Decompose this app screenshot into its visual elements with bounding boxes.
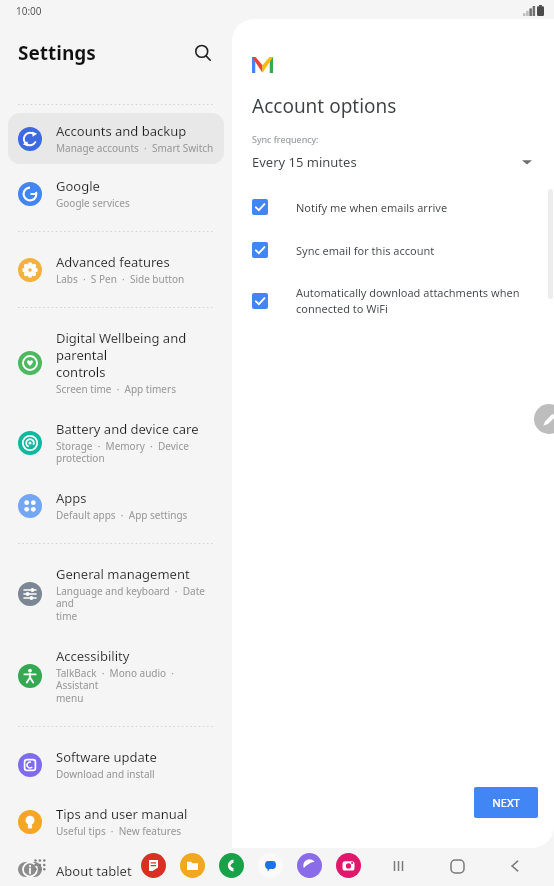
button[interactable]: Digital Wellbeing and parental controls [8, 320, 224, 405]
button[interactable]: Recents [386, 853, 412, 879]
button[interactable]: Messages [258, 853, 283, 878]
button[interactable]: Search [188, 38, 218, 68]
button[interactable]: My Files [180, 853, 205, 878]
staticText: Battery and device care [56, 420, 199, 438]
button[interactable]: Home [444, 853, 470, 879]
staticText: Accounts and backup [56, 122, 187, 140]
button[interactable]: Accounts and backup [8, 113, 224, 164]
staticText: Sync email for this account [296, 243, 534, 258]
button[interactable]: Advanced features [8, 244, 224, 295]
staticText: Automatically download attachments when … [296, 285, 534, 316]
staticText: Apps [56, 489, 87, 507]
staticText: Software update [56, 748, 157, 766]
button[interactable]: Battery and device care [8, 411, 224, 474]
staticText: Digital Wellbeing and parental controls [56, 329, 214, 381]
staticText: Tips and user manual [56, 805, 188, 823]
button[interactable]: General management [8, 556, 224, 632]
staticText: Advanced features [56, 253, 170, 271]
button[interactable]: Edit [534, 404, 554, 434]
button[interactable]: All apps [28, 853, 54, 879]
button[interactable]: Apps [8, 480, 224, 531]
staticText: Manage accounts · Smart Switch [56, 141, 214, 155]
staticText: Settings [18, 40, 96, 66]
button[interactable]: Sync email for this account [252, 236, 534, 264]
button[interactable]: Phone [219, 853, 244, 878]
button[interactable]: Every 15 minutes [252, 153, 534, 171]
button[interactable]: Samsung Notes [141, 853, 166, 878]
staticText: Default apps · App settings [56, 508, 188, 522]
staticText: Storage · Memory · Device protection [56, 439, 189, 465]
staticText: Language and keyboard · Date and time [56, 584, 214, 623]
staticText: About tablet [56, 862, 132, 877]
button[interactable]: Notify me when emails arrive [252, 193, 534, 221]
button[interactable]: Internet [297, 853, 322, 878]
staticText: Notify me when emails arrive [296, 200, 534, 215]
staticText: Every 15 minutes [252, 153, 357, 171]
button[interactable]: Tips and user manual [8, 796, 224, 847]
button[interactable]: Back [502, 853, 528, 879]
staticText: 10:00 [16, 4, 42, 18]
staticText: Accessibility [56, 647, 130, 665]
staticText: Sync frequency: [252, 133, 319, 145]
button[interactable]: Automatically download attachments when … [252, 279, 534, 322]
staticText: General management [56, 565, 190, 583]
staticText: Useful tips · New features [56, 824, 182, 838]
staticText: Labs · S Pen · Side button [56, 272, 185, 286]
staticText: Download and install [56, 767, 155, 781]
button[interactable]: NEXT [474, 787, 538, 818]
staticText: Screen time · App timers [56, 382, 176, 396]
button[interactable]: About tablet [8, 853, 224, 886]
staticText: Account options [252, 93, 397, 119]
staticText: Google services [56, 196, 130, 210]
staticText: NEXT [492, 795, 520, 810]
button[interactable]: Software update [8, 739, 224, 790]
button[interactable]: Camera [336, 853, 361, 878]
staticText: Google [56, 177, 100, 195]
button[interactable]: Accessibility [8, 638, 224, 714]
button[interactable]: Google [8, 168, 224, 219]
staticText: TalkBack · Mono audio · Assistant menu [56, 666, 214, 705]
